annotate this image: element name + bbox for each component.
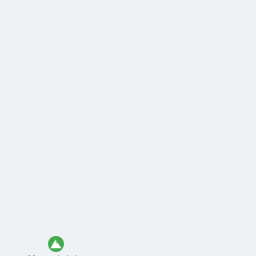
button[interactable]: Open album Mountain Lake (16, 236, 96, 256)
staticText: Mountain Lake (16, 253, 96, 256)
